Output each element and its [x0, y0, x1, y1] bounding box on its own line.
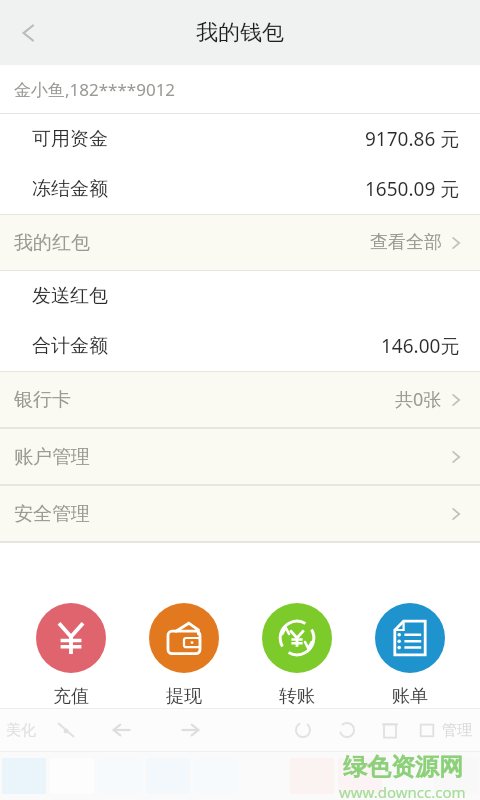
staticText: www.downcc.com [339, 782, 466, 800]
staticText: 绿色资源网 [343, 752, 463, 782]
staticText: 金小鱼,182****9012 [14, 78, 176, 101]
staticText: 银行卡 [14, 388, 71, 412]
staticText: 146.00元 [381, 333, 460, 359]
button[interactable]: 发送红包 [0, 271, 480, 321]
staticText: 转账 [279, 685, 315, 708]
staticText: 1650.09 元 [365, 176, 460, 202]
staticText: 共0张 [395, 387, 442, 412]
button[interactable]: 合计金额 [0, 321, 480, 371]
button[interactable]: 金小鱼,182****9012 [0, 65, 480, 113]
staticText: 查看全部 [370, 231, 442, 254]
staticText: 我的钱包 [196, 19, 284, 47]
staticText: 可用资金 [32, 127, 108, 151]
staticText: 合计金额 [32, 334, 108, 358]
staticText: 账单 [392, 685, 428, 708]
staticText: 发送红包 [32, 284, 108, 308]
button[interactable]: 充值 [18, 603, 123, 708]
button[interactable]: 冻结金额 [0, 164, 480, 214]
button[interactable]: 可用资金 [0, 114, 480, 164]
staticText: 9170.86 元 [365, 126, 460, 152]
staticText: 充值 [53, 685, 89, 708]
button[interactable]: 我的红包 [0, 215, 480, 270]
staticText: 安全管理 [14, 502, 90, 526]
staticText: 管理 [442, 721, 472, 740]
staticText: 美化 [6, 721, 36, 740]
button[interactable]: 银行卡 [0, 372, 480, 427]
staticText: 我的红包 [14, 231, 90, 255]
button[interactable]: 安全管理 [0, 486, 480, 541]
staticText: 提现 [166, 685, 202, 708]
staticText: 冻结金额 [32, 177, 108, 201]
button[interactable]: Back [0, 0, 58, 65]
staticText: 账户管理 [14, 445, 90, 469]
button[interactable]: 账户管理 [0, 429, 480, 484]
button[interactable]: 转账 [244, 603, 349, 708]
button[interactable]: 账单 [357, 603, 462, 708]
button[interactable]: 提现 [131, 603, 236, 708]
